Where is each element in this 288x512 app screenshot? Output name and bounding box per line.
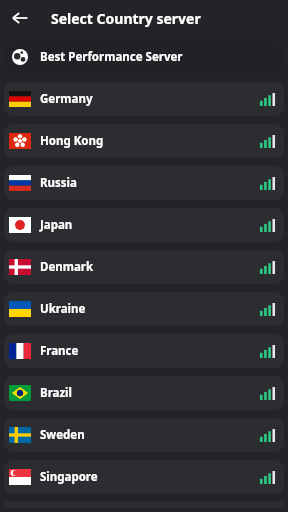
staticText: Denmark (40, 259, 94, 275)
staticText: Ukraine (40, 301, 86, 317)
button[interactable]: Ukraine (4, 292, 284, 326)
button[interactable]: Denmark (4, 250, 284, 284)
button[interactable]: Brazil (4, 376, 284, 410)
staticText: Hong Kong (40, 133, 104, 149)
button[interactable]: France (4, 334, 284, 368)
button[interactable]: Russia (4, 166, 284, 200)
button[interactable]: Germany (4, 82, 284, 116)
staticText: Russia (40, 175, 77, 191)
button[interactable]: Hong Kong (4, 124, 284, 158)
staticText: Singapore (40, 469, 98, 485)
button[interactable]: Singapore (4, 460, 284, 494)
staticText: Germany (40, 91, 93, 107)
staticText: Best Performance Server (40, 49, 183, 65)
staticText: France (40, 343, 79, 359)
staticText: Select Country server (51, 9, 201, 28)
button[interactable]: Japan (4, 208, 284, 242)
staticText: Brazil (40, 385, 72, 401)
staticText: Japan (40, 217, 73, 233)
button[interactable]: Sweden (4, 418, 284, 452)
button[interactable]: Best Performance Server (4, 40, 284, 74)
staticText: Sweden (40, 427, 85, 443)
button[interactable]: Back (5, 3, 35, 33)
